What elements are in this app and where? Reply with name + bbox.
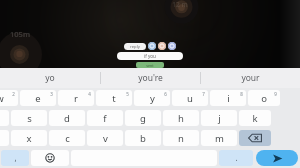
staticText: reply <box>130 44 140 50</box>
staticText: i <box>227 92 230 105</box>
button[interactable]: n <box>163 130 199 146</box>
button[interactable]: x <box>11 130 47 146</box>
button[interactable]: Send <box>256 150 298 166</box>
button[interactable]: t <box>96 90 132 106</box>
staticText: you're <box>138 72 163 84</box>
staticText: 6 <box>164 91 167 97</box>
staticText: u <box>187 92 193 105</box>
button[interactable]: b <box>125 130 161 146</box>
button[interactable]: u <box>172 90 208 106</box>
staticText: 3 <box>50 91 53 97</box>
staticText: k <box>252 112 258 125</box>
staticText: yo <box>45 72 55 84</box>
button[interactable]: sent <box>136 62 164 68</box>
button[interactable]: m <box>201 130 237 146</box>
staticText: f <box>103 112 107 125</box>
button[interactable]: Backspace <box>239 130 271 146</box>
button[interactable]: yo <box>0 68 100 88</box>
button[interactable]: j <box>201 110 237 126</box>
staticText: 2 <box>12 91 15 97</box>
button[interactable]: y <box>134 90 170 106</box>
staticText: t <box>112 92 116 105</box>
staticText: 4 <box>88 91 91 97</box>
staticText: your <box>241 72 260 84</box>
staticText: j <box>218 112 221 125</box>
button[interactable]: h <box>163 110 199 126</box>
button[interactable]: reply <box>124 43 146 50</box>
button[interactable]: g <box>125 110 161 126</box>
button[interactable]: e <box>20 90 56 106</box>
button[interactable]: v <box>87 130 123 146</box>
button[interactable]: More reactions <box>168 42 176 50</box>
staticText: c <box>65 132 70 145</box>
staticText: s <box>27 112 32 125</box>
staticText: . <box>235 152 238 163</box>
staticText: o <box>261 92 267 105</box>
button[interactable]: , <box>1 150 29 166</box>
staticText: , <box>14 152 17 163</box>
staticText: if you <box>144 53 156 59</box>
staticText: b <box>140 132 146 145</box>
button[interactable]: w <box>0 90 18 106</box>
staticText: 5 <box>126 91 129 97</box>
staticText: e <box>35 92 41 105</box>
staticText: sent <box>146 63 154 68</box>
button[interactable]: Like reaction <box>148 42 156 50</box>
button[interactable]: Love reaction <box>158 42 166 50</box>
button[interactable]: Emoji <box>31 150 69 166</box>
staticText: n <box>178 132 184 145</box>
button[interactable]: . <box>219 150 253 166</box>
staticText: 12 m <box>172 0 188 9</box>
button[interactable]: r <box>58 90 94 106</box>
button[interactable]: c <box>49 130 85 146</box>
staticText: h <box>178 112 184 125</box>
staticText: w <box>0 92 4 105</box>
button[interactable]: f <box>87 110 123 126</box>
button[interactable]: if you <box>117 52 183 60</box>
button[interactable]: d <box>49 110 85 126</box>
button[interactable]: o <box>248 90 280 106</box>
staticText: 105m <box>10 29 30 39</box>
staticText: v <box>103 132 108 145</box>
button[interactable]: i <box>210 90 246 106</box>
staticText: x <box>26 132 32 145</box>
button[interactable]: k <box>239 110 271 126</box>
staticText: d <box>64 112 70 125</box>
button[interactable]: you're <box>101 68 200 88</box>
staticText: g <box>140 112 146 125</box>
button[interactable]: s <box>11 110 47 126</box>
staticText: 8 <box>240 91 243 97</box>
staticText: 7 <box>202 91 205 97</box>
staticText: r <box>74 92 78 105</box>
staticText: m <box>215 132 224 145</box>
staticText: 9 <box>274 91 277 97</box>
button[interactable]: your <box>201 68 300 88</box>
staticText: y <box>150 92 155 105</box>
